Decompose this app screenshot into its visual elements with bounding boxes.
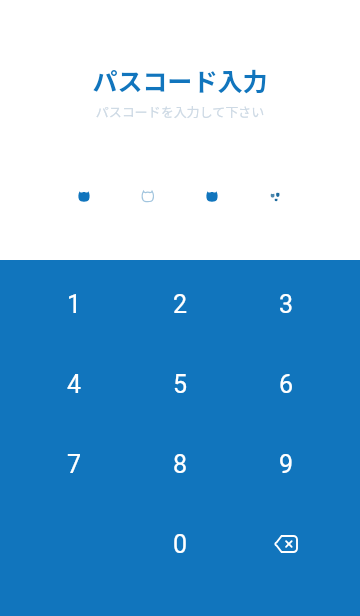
button[interactable]: 4 xyxy=(21,344,127,424)
staticText: 4 xyxy=(67,370,82,399)
staticText: パスコード入力 xyxy=(0,62,360,98)
button[interactable]: 5 xyxy=(127,344,233,424)
button[interactable]: 6 xyxy=(233,344,339,424)
button[interactable]: 9 xyxy=(233,424,339,504)
staticText: 5 xyxy=(173,370,188,399)
button[interactable]: 8 xyxy=(127,424,233,504)
staticText: 3 xyxy=(279,290,294,319)
staticText: 2 xyxy=(173,290,188,319)
other: Passcode entry indicators xyxy=(0,0,360,260)
staticText: 1 xyxy=(67,290,82,319)
button[interactable]: 3 xyxy=(233,264,339,344)
button[interactable]: 1 xyxy=(21,264,127,344)
button[interactable]: 0 xyxy=(127,504,233,584)
button[interactable]: 7 xyxy=(21,424,127,504)
button[interactable]: Delete xyxy=(233,504,339,584)
staticText: 9 xyxy=(279,450,294,479)
staticText: 6 xyxy=(279,370,294,399)
staticText: 7 xyxy=(67,450,82,479)
button[interactable]: 2 xyxy=(127,264,233,344)
staticText: パスコードを入力して下さい xyxy=(0,102,360,121)
staticText: 0 xyxy=(173,530,188,559)
staticText: 8 xyxy=(173,450,188,479)
